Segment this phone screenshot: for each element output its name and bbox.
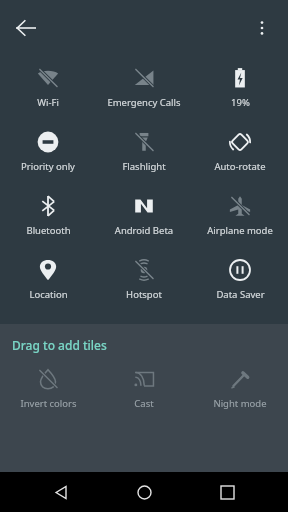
staticText: 19%	[231, 96, 250, 109]
button[interactable]: Home	[122, 472, 166, 512]
staticText: Drag to add tiles	[12, 337, 107, 353]
button[interactable]: Wi-Fi	[0, 56, 96, 120]
button[interactable]: Android Beta Program	[96, 184, 192, 248]
button[interactable]: Back	[39, 472, 83, 512]
staticText: Cast	[134, 397, 154, 410]
button[interactable]: Location	[0, 248, 96, 312]
staticText: Emergency Calls Only	[96, 96, 192, 109]
button[interactable]: Back	[4, 6, 48, 50]
button[interactable]: Recent apps	[205, 472, 249, 512]
staticText: Data Saver	[216, 288, 265, 301]
staticText: Location	[29, 288, 68, 301]
button[interactable]: Bluetooth	[0, 184, 96, 248]
button[interactable]: Airplane mode	[192, 184, 288, 248]
button[interactable]: Data Saver	[192, 248, 288, 312]
button[interactable]: Priority only	[0, 120, 96, 184]
staticText: Airplane mode	[207, 224, 273, 237]
staticText: Flashlight	[122, 160, 166, 173]
button[interactable]: More options	[240, 6, 284, 50]
button[interactable]: Flashlight	[96, 120, 192, 184]
staticText: Wi-Fi	[37, 96, 59, 109]
staticText: Android Beta Program	[96, 224, 192, 237]
staticText: Night mode	[213, 397, 267, 410]
staticText: Bluetooth	[26, 224, 71, 237]
staticText: Priority only	[21, 160, 75, 173]
button[interactable]: Auto-rotate	[192, 120, 288, 184]
button[interactable]: Hotspot	[96, 248, 192, 312]
button[interactable]: 19%	[192, 56, 288, 120]
button[interactable]: Night mode	[192, 357, 288, 421]
button[interactable]: Cast	[96, 357, 192, 421]
button[interactable]: Invert colors	[0, 357, 96, 421]
staticText: Auto-rotate	[214, 160, 266, 173]
staticText: Hotspot	[126, 288, 162, 301]
button[interactable]: Emergency Calls Only	[96, 56, 192, 120]
staticText: Invert colors	[20, 397, 77, 410]
